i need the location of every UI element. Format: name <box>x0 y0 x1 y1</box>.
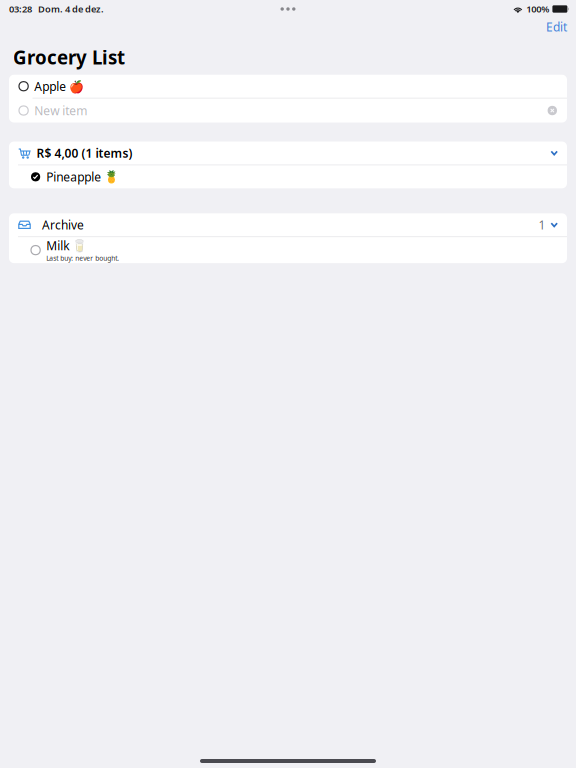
button[interactable]: Archive <box>9 213 567 236</box>
staticText: Dom. 4 de dez. <box>38 3 104 15</box>
staticText: Archive <box>42 217 84 233</box>
button[interactable]: Milk 🥛 <box>9 237 567 263</box>
button[interactable]: R$ 4,00 (1 items) <box>9 141 567 164</box>
button[interactable]: Apple 🍎 <box>9 75 567 98</box>
staticText: 100% <box>526 3 549 15</box>
staticText: 1 <box>538 217 545 233</box>
button[interactable]: New item <box>9 98 567 122</box>
staticText: Pineapple 🍍 <box>46 169 119 185</box>
staticText: Edit <box>546 19 567 35</box>
staticText: Last buy: never bought. <box>46 254 119 263</box>
staticText: New item <box>34 103 87 118</box>
staticText: Grocery List <box>13 45 125 70</box>
staticText: Apple 🍎 <box>34 78 84 94</box>
button[interactable]: Pineapple 🍍 <box>9 165 567 188</box>
staticText: 03:28 <box>9 3 32 15</box>
button[interactable]: Edit <box>537 17 576 37</box>
staticText: R$ 4,00 (1 items) <box>36 145 132 161</box>
staticText: Milk 🥛 <box>46 238 87 254</box>
